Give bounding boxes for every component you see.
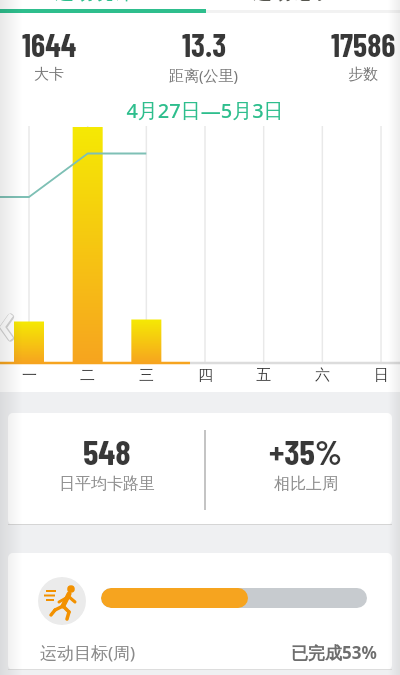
staticText: 距离(公里) bbox=[169, 65, 239, 85]
staticText: 步数 bbox=[348, 65, 378, 84]
staticText: 二 bbox=[80, 366, 95, 385]
staticText: 548 bbox=[83, 430, 131, 472]
staticText: 13.3 bbox=[182, 25, 227, 63]
staticText: 日平均卡路里 bbox=[59, 474, 155, 494]
staticText: 运动统计 bbox=[55, 0, 133, 5]
staticText: 五 bbox=[256, 366, 271, 385]
staticText: +35% bbox=[269, 430, 342, 472]
staticText: 一 bbox=[22, 366, 37, 385]
staticText: 大卡 bbox=[34, 65, 64, 84]
staticText: 运动记录 bbox=[253, 0, 331, 5]
button[interactable] bbox=[0, 9, 206, 13]
staticText: 四 bbox=[198, 366, 213, 385]
staticText: 三 bbox=[139, 366, 154, 385]
staticText: 4月27日—5月3日 bbox=[126, 97, 284, 124]
button[interactable] bbox=[0, 310, 20, 344]
staticText: 1644 bbox=[22, 25, 77, 63]
staticText: 已完成53% bbox=[291, 641, 377, 664]
button[interactable]: 548 bbox=[8, 413, 392, 525]
staticText: 六 bbox=[315, 366, 330, 385]
staticText: 运动目标(周) bbox=[40, 641, 136, 664]
staticText: 17586 bbox=[331, 25, 396, 63]
button[interactable]: 运动目标(周) bbox=[8, 553, 392, 670]
staticText: 日 bbox=[374, 366, 389, 385]
staticText: 相比上周 bbox=[274, 474, 338, 494]
